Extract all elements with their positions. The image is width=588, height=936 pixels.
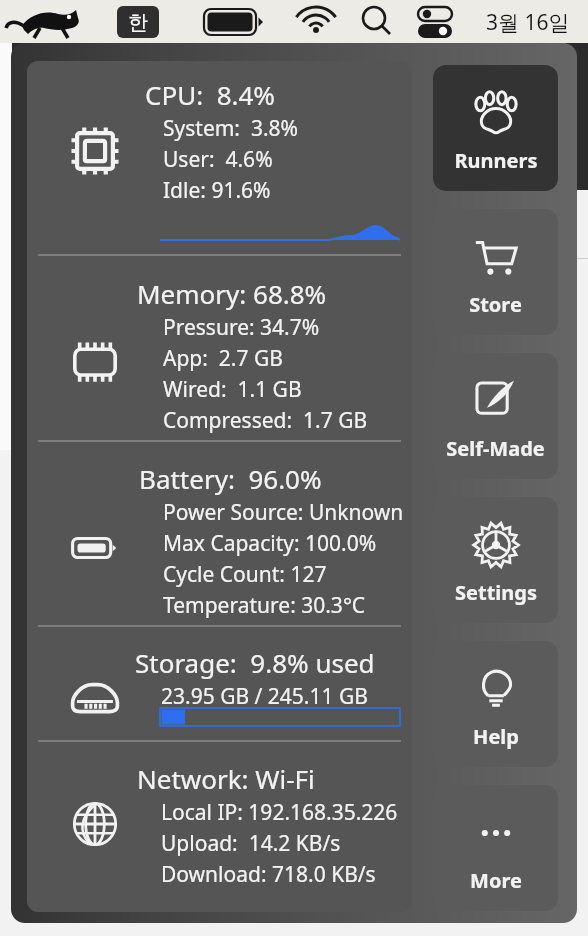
staticText: System: 3.8%	[163, 114, 299, 143]
button[interactable]: Input source Korean	[117, 6, 159, 38]
staticText: Self-Made	[446, 435, 545, 462]
staticText: Memory: 68.8%	[137, 276, 327, 311]
staticText: Compressed: 1.7 GB	[163, 406, 368, 435]
staticText: CPU: 8.4%	[145, 77, 275, 112]
button[interactable]: Control Center	[408, 0, 464, 43]
staticText: More	[470, 867, 522, 894]
button[interactable]: Runners	[433, 65, 558, 191]
button[interactable]: Help	[433, 641, 558, 767]
button[interactable]: Self-Made	[433, 353, 558, 479]
staticText: Temperature: 30.3°C	[163, 591, 366, 620]
staticText: Store	[469, 291, 522, 318]
staticText: App: 2.7 GB	[163, 344, 283, 373]
staticText: Runners	[454, 147, 538, 174]
button[interactable]: Spotlight Search	[350, 0, 402, 43]
staticText: Wired: 1.1 GB	[163, 375, 302, 404]
staticText: 23.95 GB / 245.11 GB	[161, 682, 368, 711]
staticText: User: 4.6%	[163, 145, 273, 174]
staticText: 한	[128, 10, 148, 35]
staticText: Settings	[455, 579, 537, 606]
staticText: Download: 718.0 KB/s	[161, 860, 376, 889]
staticText: Max Capacity: 100.0%	[163, 529, 377, 558]
staticText: Upload: 14.2 KB/s	[161, 829, 341, 858]
button[interactable]: More	[433, 785, 558, 911]
staticText: Idle: 91.6%	[163, 176, 271, 205]
button[interactable]: Settings	[433, 497, 558, 623]
button[interactable]: Battery	[200, 0, 270, 43]
staticText: Power Source: Unknown	[163, 498, 404, 527]
button[interactable]: Wi-Fi	[288, 0, 344, 43]
staticText: Network: Wi-Fi	[137, 761, 315, 796]
staticText: Battery: 96.0%	[139, 461, 322, 496]
staticText: Cycle Count: 127	[163, 560, 327, 589]
staticText: Pressure: 34.7%	[163, 313, 320, 342]
staticText: Help	[473, 723, 519, 750]
staticText: Storage: 9.8% used	[135, 645, 375, 680]
button[interactable]: Store	[433, 209, 558, 335]
staticText: Local IP: 192.168.35.226	[161, 798, 398, 827]
staticText: 3월 16일	[486, 8, 570, 37]
